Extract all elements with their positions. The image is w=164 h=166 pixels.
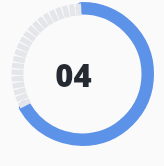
staticText: 04 (55, 54, 92, 96)
button[interactable]: Progress gauge, 4 (0, 0, 164, 166)
